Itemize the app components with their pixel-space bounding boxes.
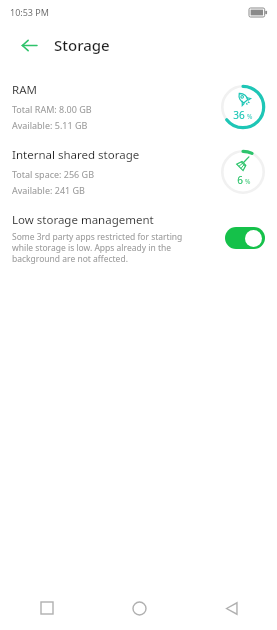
button[interactable]: Low storage management <box>0 208 277 270</box>
staticText: Available: 5.11 GB <box>12 119 88 131</box>
button[interactable]: RAM <box>0 80 277 133</box>
staticText: Storage <box>54 35 110 55</box>
staticText: Internal shared storage <box>12 147 140 163</box>
button[interactable]: Back <box>185 586 277 630</box>
staticText: Low storage management <box>12 212 154 228</box>
staticText: 36 <box>233 108 245 122</box>
button[interactable]: Back <box>12 28 46 62</box>
button[interactable]: Recent apps <box>0 586 93 630</box>
staticText: RAM <box>12 82 37 98</box>
staticText: Some 3rd party apps restricted for start… <box>12 231 205 264</box>
staticText: 10:53 PM <box>10 6 49 18</box>
staticText: 6 <box>237 173 243 187</box>
staticText: Available: 241 GB <box>12 184 85 196</box>
button[interactable]: Home <box>93 586 185 630</box>
staticText: % <box>247 112 253 121</box>
staticText: Total RAM: 8.00 GB <box>12 103 92 115</box>
staticText: Total space: 256 GB <box>12 168 95 180</box>
button[interactable]: Low storage management toggle <box>225 227 265 249</box>
staticText: % <box>245 177 251 186</box>
button[interactable]: Internal shared storage <box>0 145 277 198</box>
